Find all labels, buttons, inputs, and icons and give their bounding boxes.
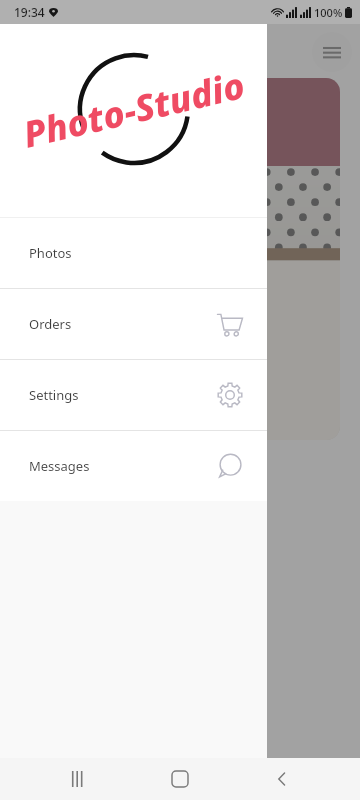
button[interactable]: Recent apps	[54, 758, 102, 800]
staticText: Photos	[29, 244, 72, 262]
button[interactable]: Settings	[0, 360, 267, 430]
button[interactable]: Open navigation menu	[312, 32, 352, 72]
staticText: Orders	[29, 315, 72, 333]
button[interactable]: Messages	[0, 431, 267, 501]
staticText: 100%	[314, 5, 343, 20]
button[interactable]: Home	[156, 758, 204, 800]
button[interactable]: Back	[258, 758, 306, 800]
staticText: 19:34	[14, 4, 45, 20]
staticText: Settings	[29, 386, 79, 404]
staticText: Photo-Studio	[18, 60, 250, 159]
button[interactable]: Orders	[0, 289, 267, 359]
staticText: Messages	[29, 457, 90, 475]
button[interactable]	[18, 78, 340, 440]
button[interactable]: Photos	[0, 218, 267, 288]
